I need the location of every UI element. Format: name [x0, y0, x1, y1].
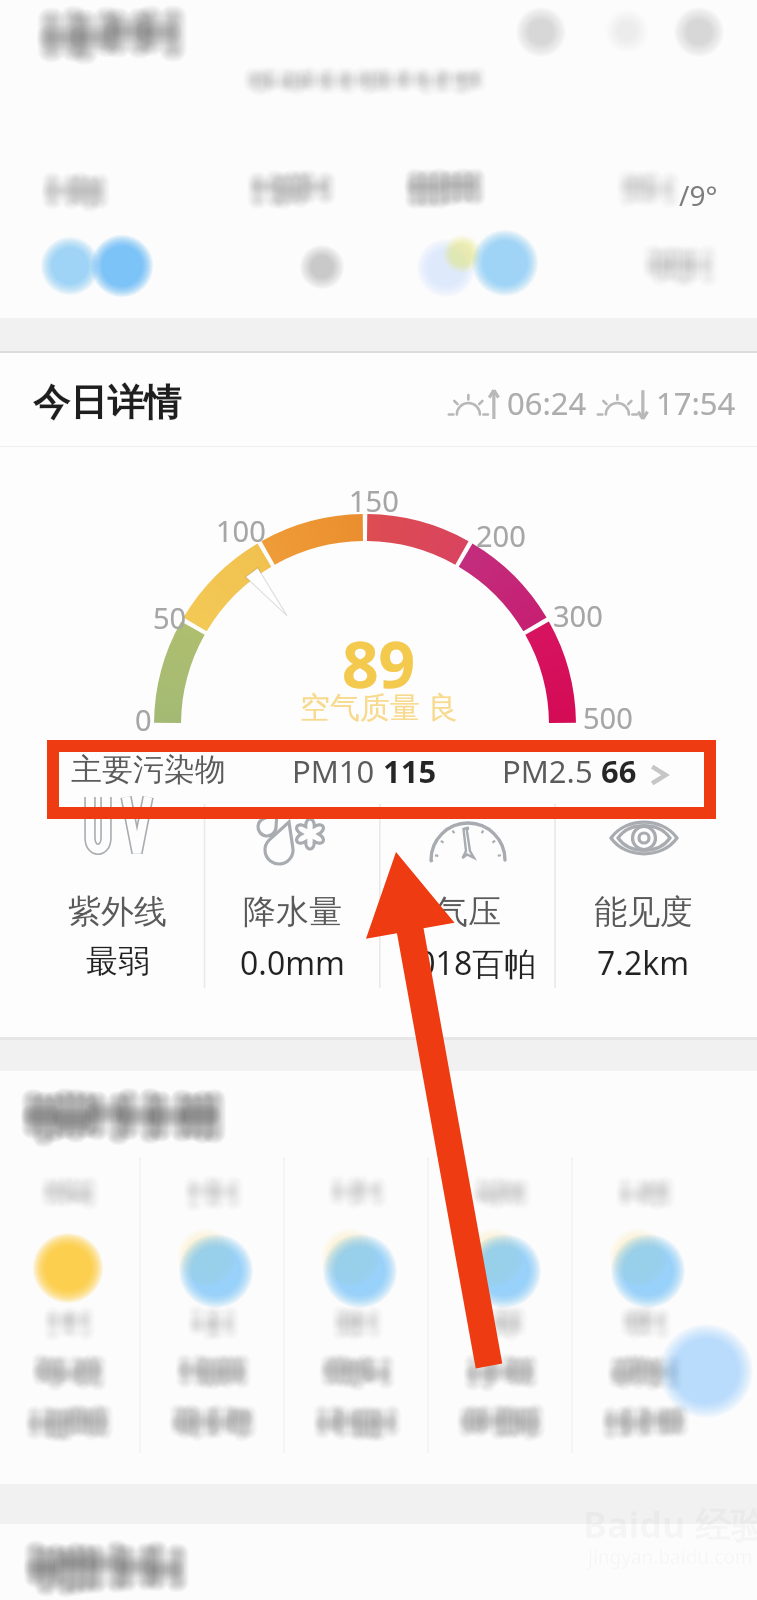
staticText: 今日详情	[33, 379, 181, 426]
staticText: 200	[476, 516, 526, 555]
staticText: 06:24	[507, 382, 587, 424]
button[interactable]: Visibility	[556, 818, 731, 1037]
staticText: 115	[383, 750, 437, 792]
other: Sunset	[599, 387, 650, 419]
staticText: 150	[349, 481, 399, 520]
staticText: 500	[583, 698, 633, 737]
staticText: 100	[216, 511, 266, 550]
staticText: PM10	[292, 750, 383, 792]
staticText: 空气质量 良	[300, 686, 458, 727]
staticText: 66	[601, 750, 637, 792]
other: Sunrise	[450, 387, 501, 419]
staticText: Baidu 经验	[583, 1500, 757, 1549]
staticText: 主要污染物	[71, 750, 226, 789]
staticText: 50	[153, 598, 187, 637]
staticText: 0.0mm	[240, 941, 346, 985]
staticText: 89	[342, 620, 416, 707]
other: More pollutant detail	[646, 761, 674, 789]
staticText: 气压	[435, 891, 501, 933]
staticText: PM2.5	[502, 750, 601, 792]
button[interactable]: Ultraviolet index	[30, 818, 205, 1037]
button[interactable]: Precipitation	[205, 818, 380, 1037]
staticText: 降水量	[243, 891, 342, 933]
button[interactable]: 主要污染物	[0, 739, 757, 818]
staticText: 0	[135, 700, 152, 739]
staticText: 紫外线	[68, 891, 167, 933]
staticText: 1018百帕	[399, 941, 537, 985]
staticText: 7.2km	[597, 941, 690, 985]
staticText: 最弱	[86, 941, 150, 981]
staticText: /9°	[679, 176, 718, 214]
staticText: 能见度	[594, 891, 693, 933]
button[interactable]: Air pressure	[380, 818, 555, 1037]
staticText: 17:54	[656, 382, 736, 424]
staticText: 300	[553, 596, 603, 635]
